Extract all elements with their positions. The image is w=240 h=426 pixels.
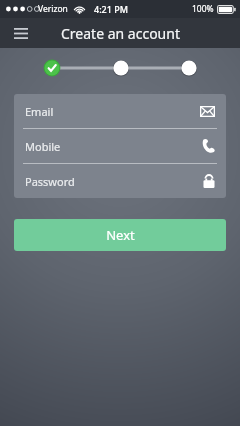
button[interactable]: Password <box>14 164 226 198</box>
staticText: 4:21 PM <box>94 3 128 15</box>
staticText: 100% <box>192 3 214 15</box>
button[interactable]: Open navigation menu <box>8 20 34 46</box>
staticText: Next <box>106 226 135 244</box>
staticText: Email <box>25 104 54 119</box>
staticText: Verizon <box>38 3 68 15</box>
staticText: Mobile <box>25 139 61 154</box>
button[interactable]: Email <box>14 94 226 129</box>
button[interactable]: Mobile <box>14 129 226 164</box>
button[interactable]: Next <box>14 219 226 251</box>
staticText: Create an account <box>61 24 180 43</box>
staticText: Password <box>25 174 75 189</box>
